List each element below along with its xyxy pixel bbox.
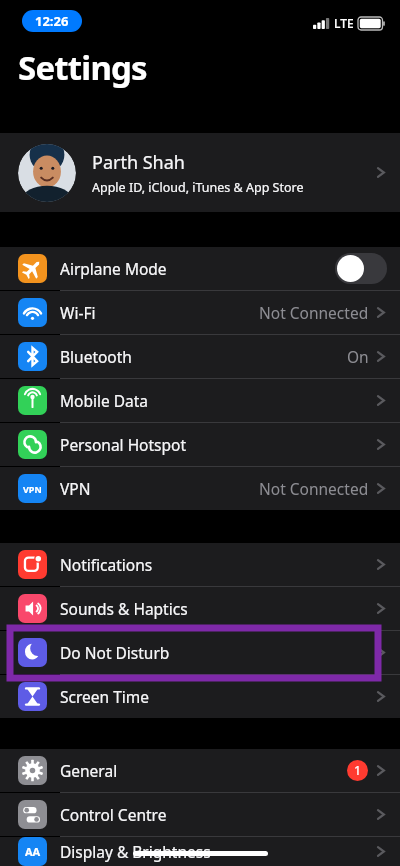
staticText: Wi-Fi <box>60 302 96 323</box>
staticText: Not Connected <box>259 478 369 499</box>
staticText: Personal Hotspot <box>60 434 187 455</box>
staticText: General <box>60 760 118 781</box>
staticText: Settings <box>18 45 147 90</box>
button[interactable]: Bluetooth <box>0 335 400 378</box>
staticText: Screen Time <box>60 686 149 707</box>
button[interactable]: VPN <box>0 467 400 510</box>
staticText: VPN <box>23 483 42 495</box>
staticText: Display & Brightness <box>60 841 211 862</box>
staticText: VPN <box>60 478 91 499</box>
staticText: Notifications <box>60 554 153 575</box>
button[interactable]: Notifications <box>0 543 400 586</box>
button[interactable]: Do Not Disturb <box>0 631 400 674</box>
staticText: Airplane Mode <box>60 258 167 279</box>
staticText: 1 <box>354 762 362 779</box>
button[interactable]: General <box>0 749 400 792</box>
button[interactable]: Parth Shah <box>0 133 400 212</box>
button[interactable]: Screen Time <box>0 675 400 718</box>
staticText: Parth Shah <box>92 150 185 175</box>
button[interactable]: Sounds & Haptics <box>0 587 400 630</box>
button[interactable]: Airplane Mode <box>0 247 400 290</box>
button[interactable]: Control Centre <box>0 793 400 836</box>
button[interactable]: Airplane Mode toggle <box>335 253 387 284</box>
button[interactable]: AA <box>0 837 400 866</box>
staticText: Sounds & Haptics <box>60 598 188 619</box>
staticText: LTE <box>334 15 354 31</box>
staticText: Mobile Data <box>60 390 149 411</box>
staticText: Not Connected <box>259 302 369 323</box>
staticText: Control Centre <box>60 804 167 825</box>
button[interactable]: Mobile Data <box>0 379 400 422</box>
button[interactable]: Wi-Fi <box>0 291 400 334</box>
staticText: Apple ID, iCloud, iTunes & App Store <box>92 179 304 196</box>
button[interactable]: Personal Hotspot <box>0 423 400 466</box>
staticText: Do Not Disturb <box>60 642 170 663</box>
staticText: Bluetooth <box>60 346 132 367</box>
staticText: On <box>347 346 369 367</box>
staticText: AA <box>25 844 41 859</box>
staticText: 12:26 <box>35 12 69 30</box>
